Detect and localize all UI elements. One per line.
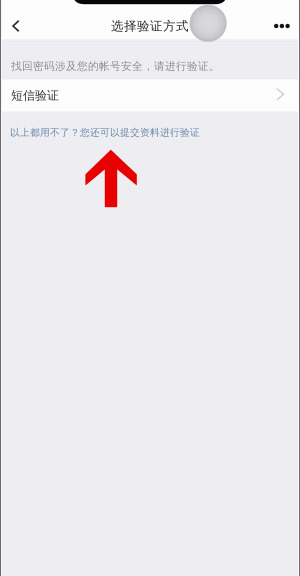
staticText: 选择验证方式 [111, 18, 189, 34]
staticText: 找回密码涉及您的帐号安全，请进行验证。 [11, 59, 220, 73]
staticText: 以上都用不了？您还可以提交资料进行验证 [10, 126, 200, 139]
staticText: 短信验证 [11, 88, 59, 103]
button[interactable]: 以上都用不了？您还可以提交资料进行验证 [0, 111, 300, 142]
button[interactable]: Back [1, 10, 31, 42]
button[interactable]: More options [266, 10, 298, 42]
button[interactable]: 短信验证 [0, 79, 300, 111]
